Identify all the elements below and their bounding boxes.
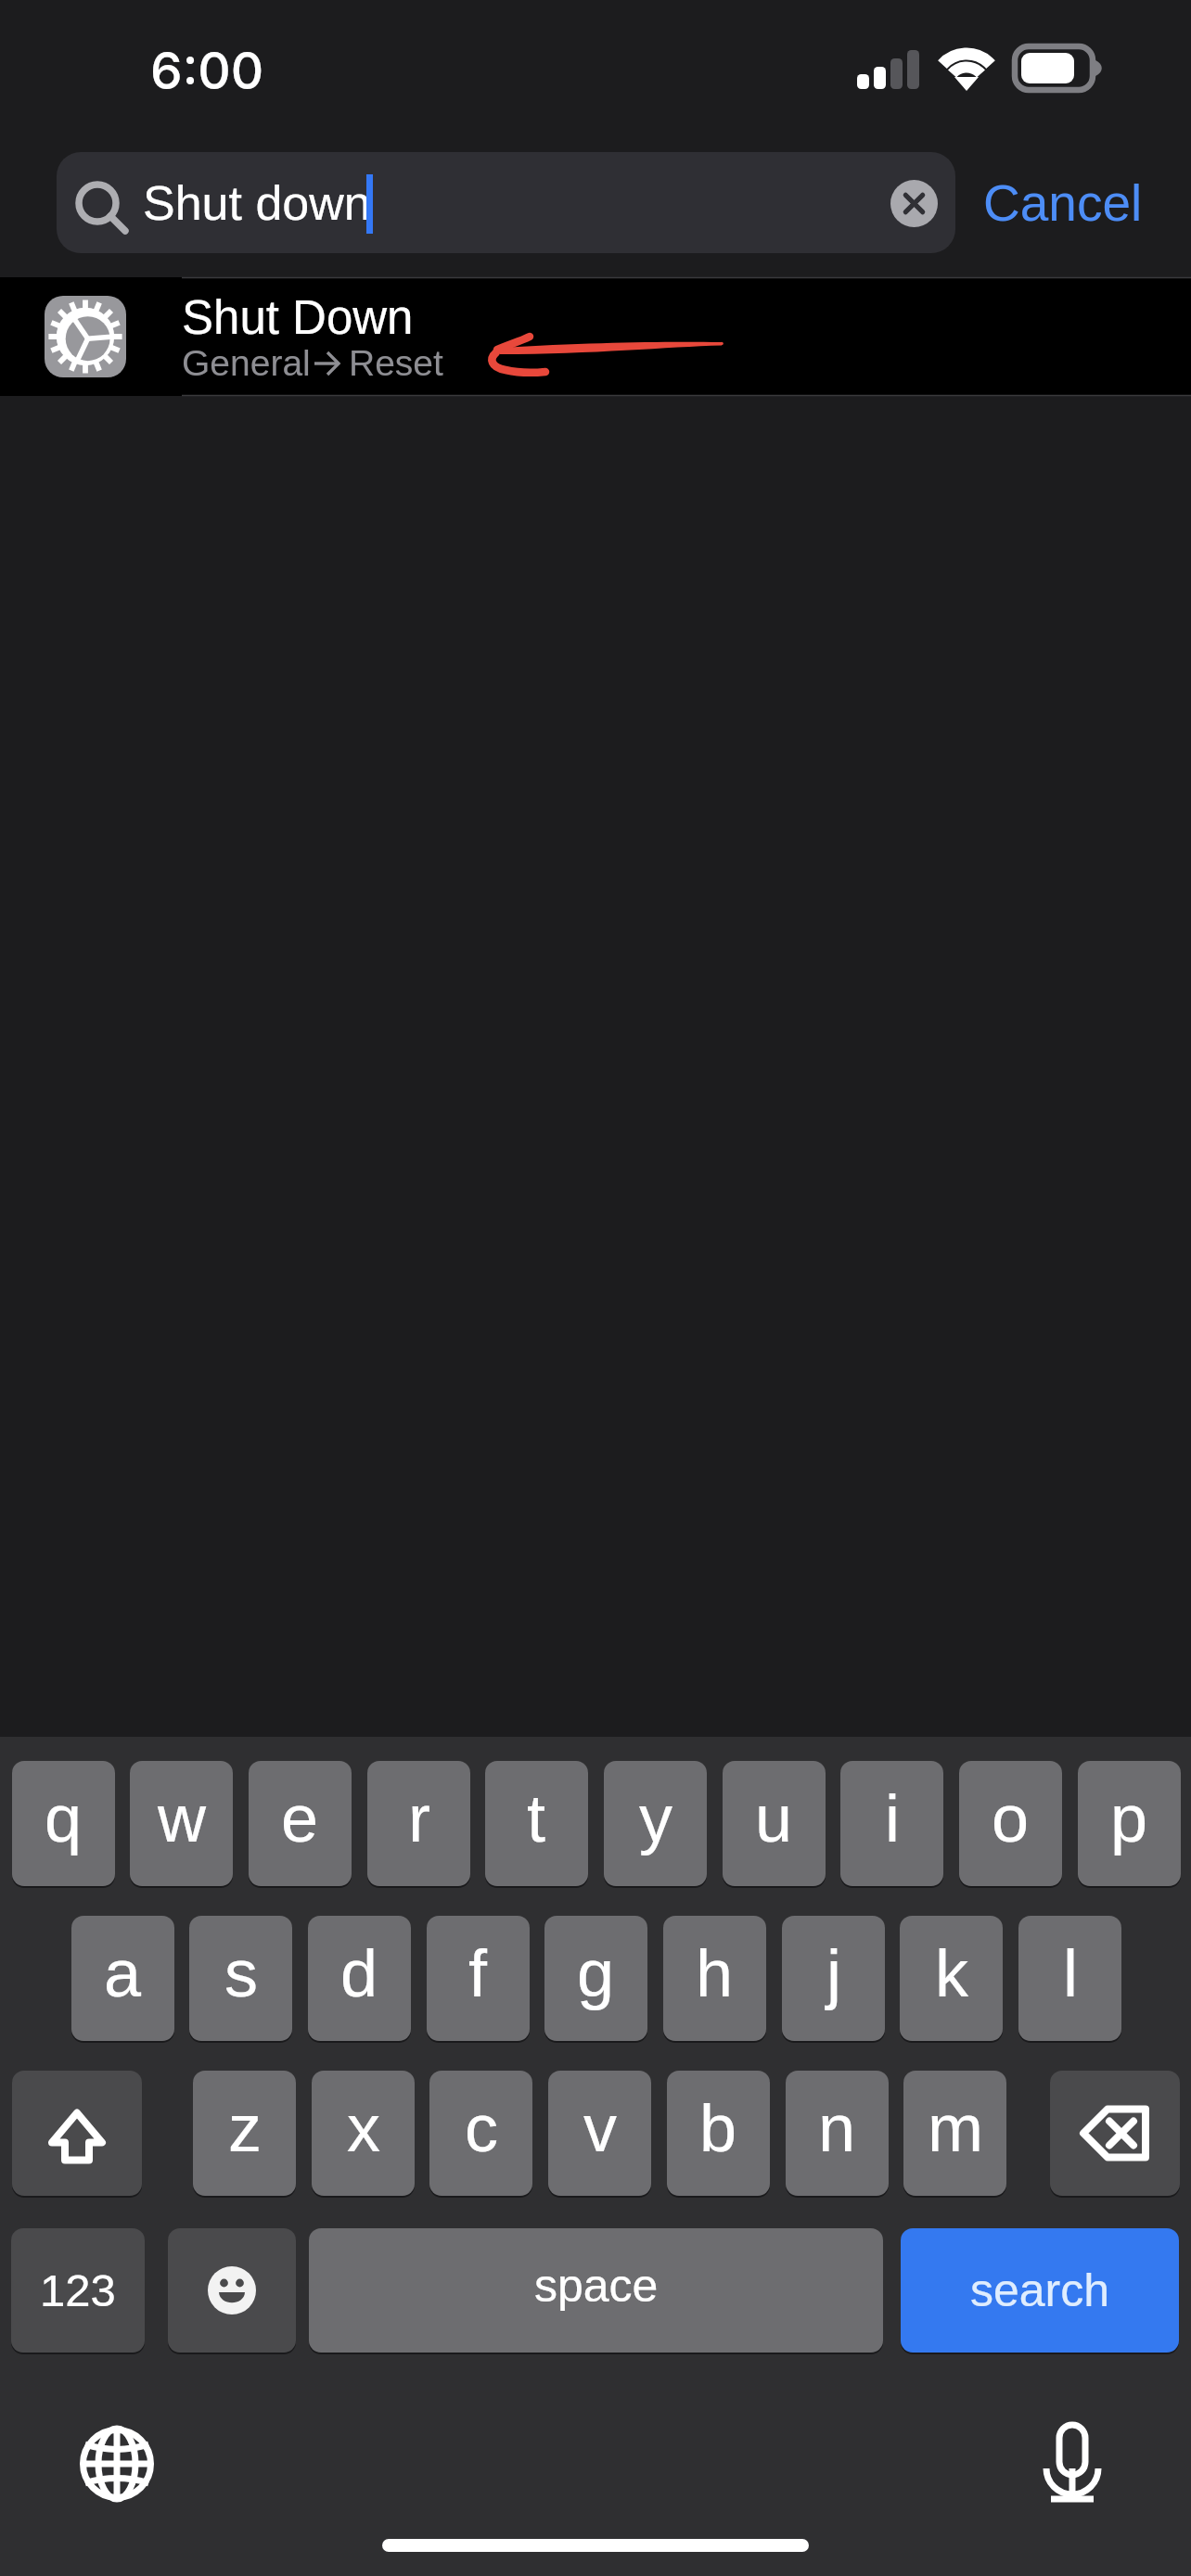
staticText: g (577, 1936, 615, 2010)
staticText: c (465, 2091, 498, 2165)
staticText: r (408, 1781, 430, 1855)
staticText: Reset (349, 343, 443, 384)
staticText: Cancel (983, 174, 1143, 231)
staticText: d (340, 1936, 378, 2010)
staticText: Shut down (143, 176, 371, 230)
staticText: l (1063, 1936, 1078, 2010)
button[interactable]: q (12, 1761, 115, 1886)
button[interactable]: p (1078, 1761, 1181, 1886)
staticText: z (228, 2091, 262, 2165)
staticText: n (818, 2091, 856, 2165)
button[interactable]: d (308, 1916, 411, 2041)
staticText: b (699, 2091, 737, 2165)
button[interactable]: v (548, 2071, 651, 2196)
staticText: e (281, 1781, 319, 1855)
button[interactable]: i (840, 1761, 943, 1886)
staticText: 123 (40, 2265, 116, 2316)
staticText: Shut Down (182, 291, 414, 344)
staticText: search (970, 2264, 1110, 2316)
button[interactable]: w (130, 1761, 233, 1886)
staticText: a (104, 1936, 142, 2010)
staticText: space (534, 2260, 659, 2312)
button[interactable]: Shut down (57, 152, 955, 253)
staticText: s (224, 1936, 258, 2010)
staticText: p (1110, 1781, 1148, 1855)
button[interactable]: l (1018, 1916, 1121, 2041)
button[interactable]: y (604, 1761, 707, 1886)
staticText: k (935, 1936, 968, 2010)
staticText: i (885, 1781, 900, 1855)
button[interactable]: h (663, 1916, 766, 2041)
button[interactable]: t (485, 1761, 588, 1886)
button[interactable]: Dictation (1033, 2427, 1111, 2505)
button[interactable]: Change keyboard (78, 2425, 156, 2503)
staticText: o (992, 1781, 1030, 1855)
staticText: General (182, 343, 311, 384)
button[interactable]: space (309, 2228, 883, 2353)
staticText: m (928, 2091, 983, 2165)
staticText: 6:00 (150, 40, 264, 102)
button[interactable]: 123 (11, 2228, 145, 2353)
staticText: t (527, 1781, 546, 1855)
staticText: h (696, 1936, 734, 2010)
button[interactable]: g (544, 1916, 647, 2041)
staticText: v (583, 2091, 617, 2165)
button[interactable]: search (901, 2228, 1179, 2353)
button[interactable]: j (782, 1916, 885, 2041)
button[interactable]: b (667, 2071, 770, 2196)
button[interactable]: u (723, 1761, 826, 1886)
button[interactable]: Cancel (970, 152, 1156, 253)
button[interactable]: Shift (12, 2071, 142, 2196)
button[interactable]: e (249, 1761, 352, 1886)
button[interactable]: Shut Down (0, 277, 1191, 396)
button[interactable]: s (189, 1916, 292, 2041)
button[interactable]: Clear text (890, 180, 938, 227)
button[interactable]: Backspace (1050, 2071, 1180, 2196)
staticText: j (826, 1936, 841, 2010)
staticText: f (468, 1936, 488, 2010)
button[interactable]: Emoji keyboard (168, 2228, 296, 2353)
staticText: y (639, 1781, 672, 1855)
staticText: q (45, 1781, 83, 1855)
button[interactable]: x (312, 2071, 415, 2196)
staticText: w (158, 1781, 206, 1855)
button[interactable]: m (903, 2071, 1006, 2196)
button[interactable]: r (367, 1761, 470, 1886)
button[interactable]: c (429, 2071, 532, 2196)
button[interactable]: n (786, 2071, 889, 2196)
button[interactable]: o (959, 1761, 1062, 1886)
staticText: x (347, 2091, 380, 2165)
staticText: u (755, 1781, 793, 1855)
button[interactable]: a (71, 1916, 174, 2041)
button[interactable]: k (900, 1916, 1003, 2041)
button[interactable]: f (427, 1916, 530, 2041)
button[interactable]: z (193, 2071, 296, 2196)
